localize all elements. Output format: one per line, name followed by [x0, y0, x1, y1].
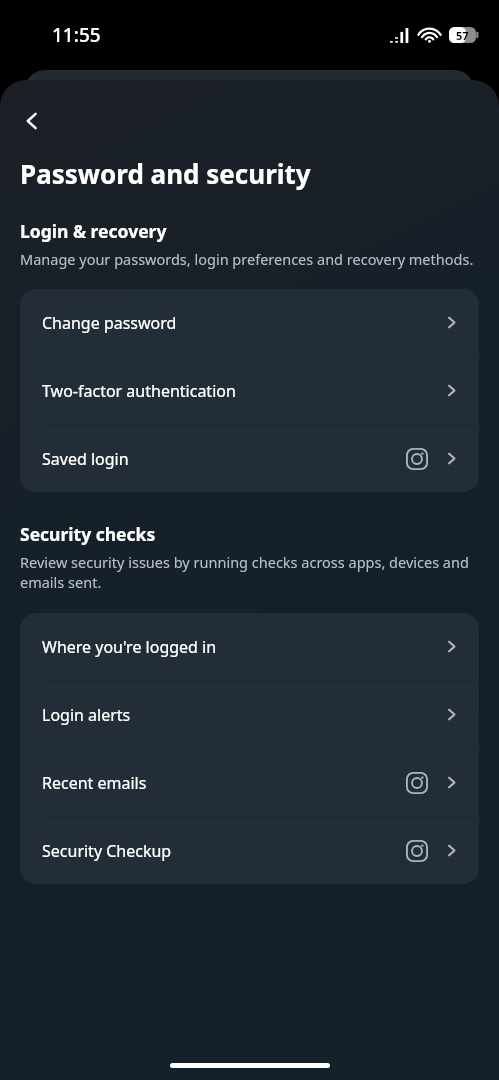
- button[interactable]: Change password: [20, 289, 479, 356]
- button[interactable]: Two-factor authentication: [20, 357, 479, 424]
- staticText: 11:55: [52, 22, 101, 48]
- staticText: Manage your passwords, login preferences…: [20, 249, 474, 269]
- staticText: Password and security: [20, 156, 311, 191]
- button[interactable]: Recent emails: [20, 749, 479, 816]
- staticText: Where you're logged in: [42, 636, 444, 658]
- button[interactable]: Security Checkup: [20, 817, 479, 884]
- staticText: Login & recovery: [20, 219, 167, 243]
- staticText: Recent emails: [42, 772, 406, 794]
- staticText: 57: [456, 28, 469, 43]
- button[interactable]: Where you're logged in: [20, 613, 479, 680]
- staticText: Review security issues by running checks…: [20, 552, 475, 593]
- button[interactable]: Back: [11, 100, 53, 142]
- staticText: Security checks: [20, 522, 156, 546]
- staticText: Saved login: [42, 448, 406, 470]
- staticText: Login alerts: [42, 704, 444, 726]
- button[interactable]: Saved login: [20, 425, 479, 492]
- staticText: Change password: [42, 312, 444, 334]
- staticText: Two-factor authentication: [42, 380, 444, 402]
- staticText: Security Checkup: [42, 840, 406, 862]
- button[interactable]: Login alerts: [20, 681, 479, 748]
